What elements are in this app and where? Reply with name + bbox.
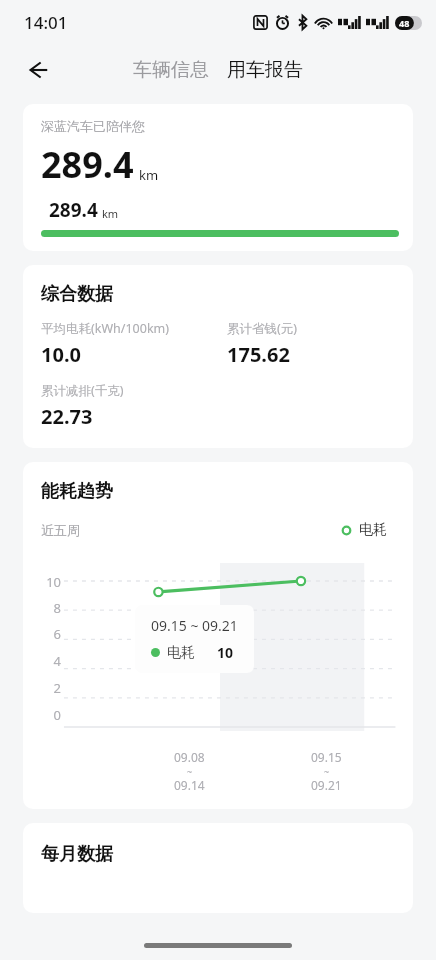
staticText: km [102,206,119,221]
staticText: 10 [217,643,234,662]
staticText: 车辆信息 [133,58,209,82]
staticText: 每月数据 [41,843,113,866]
staticText: 2 [53,679,61,697]
staticText: 09.08 [174,749,205,765]
staticText: 综合数据 [41,283,113,306]
staticText: 4 [53,652,61,670]
staticText: 深蓝汽车已陪伴您 [41,118,145,134]
staticText: 电耗 [167,644,195,662]
staticText: 6 [53,625,61,643]
staticText: ~ [187,765,193,777]
staticText: 09.15 ~ 09.21 [151,616,238,635]
staticText: 289.4 [41,140,134,189]
staticText: 289.4 [49,197,98,223]
staticText: 09.21 [311,777,342,793]
staticText: 10.0 [41,341,81,368]
staticText: 22.73 [41,403,93,430]
staticText: 累计减排(千克) [41,382,124,399]
staticText: 近五周 [41,522,80,538]
staticText: 0 [53,706,61,724]
staticText: 09.14 [174,777,205,793]
staticText: 用车报告 [227,58,303,82]
staticText: 09.15 [311,749,342,765]
button[interactable]: 车辆信息 [129,52,213,88]
button[interactable]: Back [16,48,60,92]
staticText: 48 [399,17,410,29]
staticText: 8 [53,599,61,617]
staticText: 累计省钱(元) [227,320,298,337]
staticText: 能耗趋势 [41,480,113,503]
staticText: 175.62 [227,341,290,368]
staticText: 平均电耗(kWh/100km) [41,320,169,337]
staticText: 14:01 [24,11,68,34]
staticText: ~ [324,765,330,777]
staticText: 电耗 [359,521,387,539]
staticText: km [139,166,159,184]
button[interactable]: 用车报告 [223,52,307,88]
button[interactable]: 电耗 [338,517,391,543]
staticText: 10 [46,573,61,591]
